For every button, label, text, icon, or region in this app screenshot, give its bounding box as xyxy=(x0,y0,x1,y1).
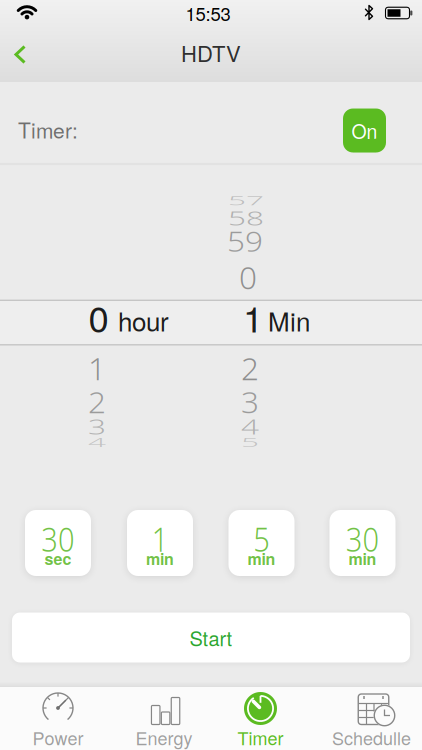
staticText: sec xyxy=(44,547,71,570)
staticText: Timer: xyxy=(18,114,78,145)
staticText: Schedulle xyxy=(332,725,411,750)
staticText: 57 xyxy=(228,178,264,221)
button[interactable]: 30 xyxy=(25,510,91,576)
staticText: 2 xyxy=(241,346,259,389)
staticText: 0 xyxy=(88,291,108,343)
button[interactable]: Power xyxy=(8,682,108,750)
staticText: 59 xyxy=(227,219,263,262)
staticText: 5 xyxy=(241,420,259,463)
staticText: 1 xyxy=(243,291,263,343)
staticText: 15:53 xyxy=(185,0,230,26)
staticText: 30 xyxy=(343,516,381,561)
staticText: 1 xyxy=(88,346,106,389)
staticText: Timer xyxy=(237,725,283,750)
staticText: On xyxy=(351,116,377,144)
staticText: min xyxy=(348,547,376,570)
staticText: 3 xyxy=(88,405,106,448)
button[interactable] xyxy=(14,45,27,64)
staticText: hour xyxy=(118,302,169,339)
staticText: 58 xyxy=(228,196,264,239)
button[interactable]: 30 xyxy=(329,510,395,576)
staticText: 0 xyxy=(239,255,257,298)
staticText: 5 xyxy=(252,516,271,561)
staticText: HDTV xyxy=(181,37,241,68)
staticText: min xyxy=(146,547,174,570)
staticText: 1 xyxy=(150,516,169,561)
button[interactable]: Schedulle xyxy=(321,682,421,750)
button[interactable]: 5 xyxy=(228,510,294,576)
staticText: Min xyxy=(268,302,310,339)
button[interactable]: Timer xyxy=(210,682,310,750)
staticText: 4 xyxy=(88,420,106,463)
staticText: Energy xyxy=(135,725,192,750)
button[interactable]: 1 xyxy=(127,510,193,576)
staticText: 3 xyxy=(241,380,259,423)
staticText: Power xyxy=(32,725,83,750)
button[interactable]: Energy xyxy=(114,682,214,750)
staticText: Start xyxy=(189,623,232,652)
button[interactable]: Start xyxy=(12,612,410,662)
staticText: 4 xyxy=(241,405,259,448)
staticText: min xyxy=(247,547,275,570)
button[interactable]: On xyxy=(343,108,386,152)
staticText: 2 xyxy=(88,380,106,423)
staticText: 30 xyxy=(39,516,77,561)
